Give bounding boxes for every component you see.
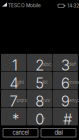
staticText: 1: [12, 56, 18, 74]
button[interactable]: cancel: [3, 128, 38, 137]
staticText: 14:32: [67, 3, 79, 9]
staticText: 2: [35, 56, 44, 74]
button[interactable]: *: [1, 108, 26, 125]
button[interactable]: 0: [27, 108, 52, 125]
button[interactable]: 7: [1, 90, 26, 107]
button[interactable]: #: [53, 108, 78, 125]
staticText: ghi: [16, 79, 23, 85]
staticText: TESCO Mobile: [8, 2, 41, 8]
staticText: tuv: [42, 97, 50, 103]
staticText: jkl: [42, 79, 47, 85]
button[interactable]: 2: [27, 54, 52, 71]
staticText: pqrs: [16, 97, 27, 103]
staticText: wxyz: [68, 97, 79, 103]
button[interactable]: dial: [41, 128, 76, 137]
staticText: 9: [61, 92, 70, 110]
staticText: 4: [9, 74, 18, 92]
staticText: cancel: [12, 129, 28, 136]
staticText: def: [68, 61, 76, 67]
staticText: 0: [35, 110, 44, 128]
staticText: *: [12, 110, 19, 128]
staticText: 6: [61, 74, 70, 92]
staticText: +: [42, 115, 46, 121]
button[interactable]: 1: [1, 54, 26, 71]
button[interactable]: 6: [53, 72, 78, 89]
staticText: abc: [42, 61, 51, 67]
button[interactable]: 9: [53, 90, 78, 107]
staticText: 7: [9, 92, 17, 110]
staticText: 5: [35, 74, 44, 92]
button[interactable]: 5: [27, 72, 52, 89]
staticText: mno: [68, 79, 79, 85]
staticText: dial: [54, 129, 62, 136]
button[interactable]: 3: [53, 54, 78, 71]
button[interactable]: 8: [27, 90, 52, 107]
staticText: #: [63, 110, 72, 128]
staticText: 8: [35, 92, 44, 110]
button[interactable]: 4: [1, 72, 26, 89]
staticText: 3: [61, 56, 70, 74]
